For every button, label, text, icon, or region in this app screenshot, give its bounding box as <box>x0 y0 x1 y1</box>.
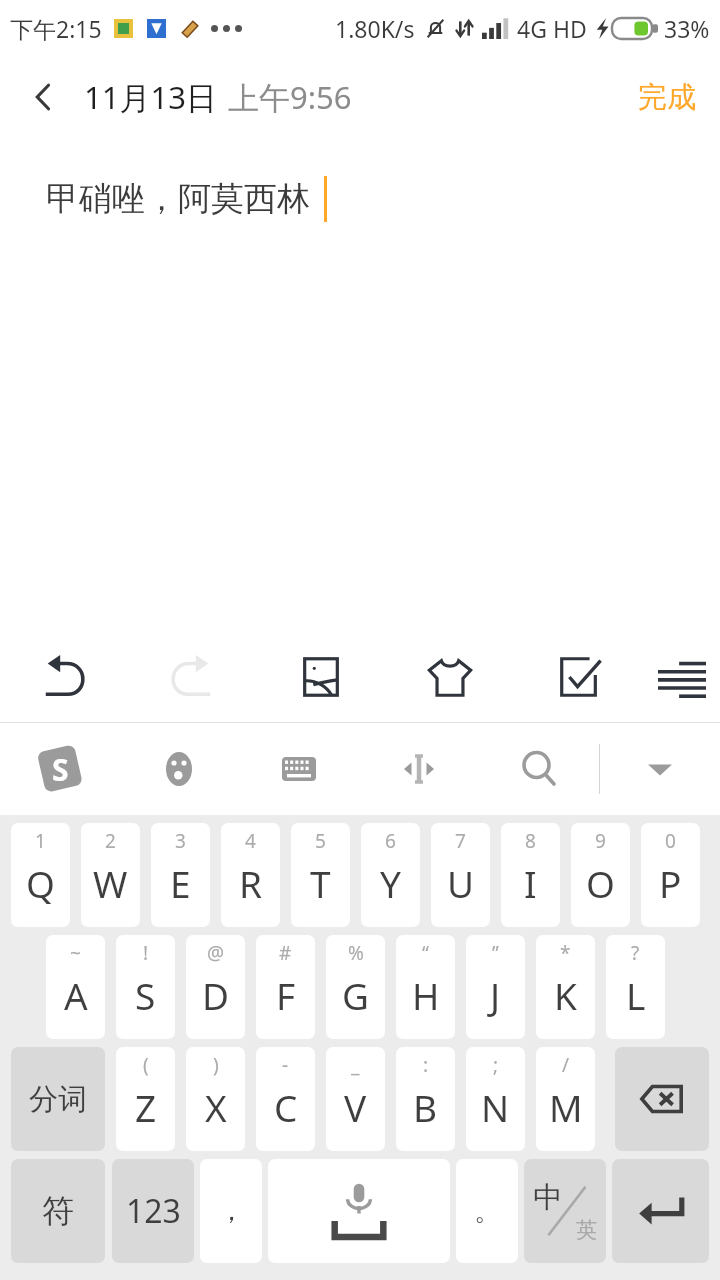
button[interactable]: Keyboard layout <box>239 723 359 815</box>
staticText: G <box>342 970 369 1020</box>
button[interactable]: Back <box>16 69 72 125</box>
button[interactable]: Search <box>479 723 599 815</box>
button[interactable]: 符 <box>11 1159 105 1263</box>
button[interactable]: ( <box>116 1047 175 1151</box>
button[interactable]: 9 <box>571 823 630 927</box>
staticText: 分词 <box>29 1081 87 1118</box>
button[interactable]: 4 <box>221 823 280 927</box>
button[interactable]: Hide keyboard <box>600 723 720 815</box>
button[interactable]: Comma <box>200 1159 262 1263</box>
staticText: F <box>276 970 296 1020</box>
button[interactable]: ? <box>606 935 665 1039</box>
button[interactable]: Insert image <box>256 632 385 722</box>
button[interactable]: 3 <box>151 823 210 927</box>
staticText: H <box>412 970 440 1020</box>
button[interactable]: Align <box>643 632 720 722</box>
staticText: R <box>239 858 263 908</box>
button[interactable]: Space <box>268 1159 450 1263</box>
staticText: T <box>310 858 331 908</box>
button[interactable]: 0 <box>641 823 700 927</box>
staticText: 。 <box>474 1194 501 1228</box>
staticText: E <box>170 858 191 908</box>
staticText: ( <box>143 1052 149 1078</box>
button[interactable]: @ <box>186 935 245 1039</box>
button[interactable]: / <box>536 1047 595 1151</box>
staticText: 6 <box>385 828 396 854</box>
staticText: P <box>659 858 682 908</box>
staticText: 4G HD <box>517 13 587 44</box>
staticText: ) <box>213 1052 219 1078</box>
staticText: : <box>423 1052 429 1078</box>
button[interactable]: Emoji <box>119 723 239 815</box>
staticText: O <box>586 858 615 908</box>
button[interactable]: Checklist <box>514 632 643 722</box>
button[interactable]: Move cursor <box>359 723 479 815</box>
staticText: 8 <box>525 828 536 854</box>
staticText: A <box>64 970 88 1020</box>
button[interactable]: Redo <box>128 632 256 722</box>
button[interactable]: ) <box>186 1047 245 1151</box>
button[interactable]: ! <box>116 935 175 1039</box>
button[interactable]: * <box>536 935 595 1039</box>
staticText: U <box>447 858 475 908</box>
button[interactable]: Undo <box>0 632 128 722</box>
staticText: ” <box>492 940 499 966</box>
staticText: 5 <box>315 828 326 854</box>
button[interactable]: % <box>326 935 385 1039</box>
staticText: 下午2:15 <box>10 13 102 44</box>
staticText: M <box>549 1082 583 1132</box>
staticText: S <box>135 970 156 1020</box>
button[interactable]: 1 <box>11 823 70 927</box>
button[interactable]: 分词 <box>11 1047 105 1151</box>
button[interactable]: 6 <box>361 823 420 927</box>
button[interactable]: 5 <box>291 823 350 927</box>
staticText: 11月13日 <box>84 76 217 118</box>
staticText: ~ <box>70 940 81 966</box>
button[interactable]: _ <box>326 1047 385 1151</box>
button[interactable]: “ <box>396 935 455 1039</box>
staticText: K <box>554 970 577 1020</box>
staticText: C <box>274 1082 298 1132</box>
staticText: 英 <box>576 1217 597 1243</box>
staticText: 3 <box>175 828 186 854</box>
staticText: 7 <box>455 828 466 854</box>
button[interactable]: ; <box>466 1047 525 1151</box>
button[interactable]: Theme <box>385 632 514 722</box>
button[interactable]: 完成 <box>626 69 708 126</box>
button[interactable]: Sogou input <box>0 723 119 815</box>
button[interactable]: Backspace <box>615 1047 709 1151</box>
staticText: L <box>626 970 646 1020</box>
staticText: ， <box>218 1194 245 1228</box>
button[interactable]: # <box>256 935 315 1039</box>
staticText: 0 <box>665 828 676 854</box>
staticText: X <box>205 1082 227 1132</box>
button[interactable]: ” <box>466 935 525 1039</box>
staticText: * <box>560 940 571 966</box>
staticText: - <box>282 1052 289 1078</box>
staticText: V <box>344 1082 367 1132</box>
button[interactable]: - <box>256 1047 315 1151</box>
staticText: 中 <box>533 1179 562 1216</box>
button[interactable]: Period <box>456 1159 518 1263</box>
staticText: ? <box>631 940 640 966</box>
staticText: 符 <box>42 1191 74 1231</box>
button[interactable]: 2 <box>81 823 140 927</box>
staticText: # <box>279 940 292 966</box>
button[interactable]: : <box>396 1047 455 1151</box>
staticText: D <box>202 970 230 1020</box>
staticText: J <box>490 970 501 1020</box>
staticText: S <box>52 749 69 790</box>
staticText: 33% <box>664 13 710 44</box>
button[interactable]: 8 <box>501 823 560 927</box>
staticText: 123 <box>126 1189 181 1233</box>
button[interactable]: 7 <box>431 823 490 927</box>
staticText: Z <box>135 1082 157 1132</box>
button[interactable]: Chinese English toggle <box>524 1159 606 1263</box>
staticText: 甲硝唑，阿莫西林 <box>46 178 310 220</box>
staticText: 1 <box>35 828 46 854</box>
button[interactable]: Enter <box>612 1159 709 1263</box>
staticText: / <box>562 1052 570 1078</box>
button[interactable]: ~ <box>46 935 105 1039</box>
staticText: @ <box>207 940 225 966</box>
button[interactable]: 123 <box>112 1159 194 1263</box>
